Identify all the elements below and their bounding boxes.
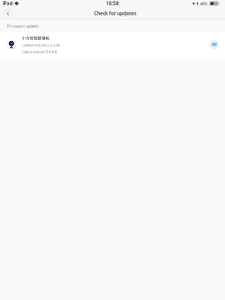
button[interactable]: 小方智能摄像机 [0, 32, 225, 57]
staticText: 16:58 [106, 0, 119, 7]
staticText: Latest version:3.0.4.8 [22, 50, 57, 54]
staticText: iPad [3, 0, 13, 7]
staticText: Firmware updates [7, 23, 39, 29]
staticText: Check for updates [94, 10, 136, 17]
staticText: 小方智能摄像机 [22, 36, 50, 41]
staticText: 40% [200, 1, 208, 6]
button[interactable]: Back [1, 7, 15, 20]
staticText: Current version:3.3.3.08 [22, 43, 60, 47]
